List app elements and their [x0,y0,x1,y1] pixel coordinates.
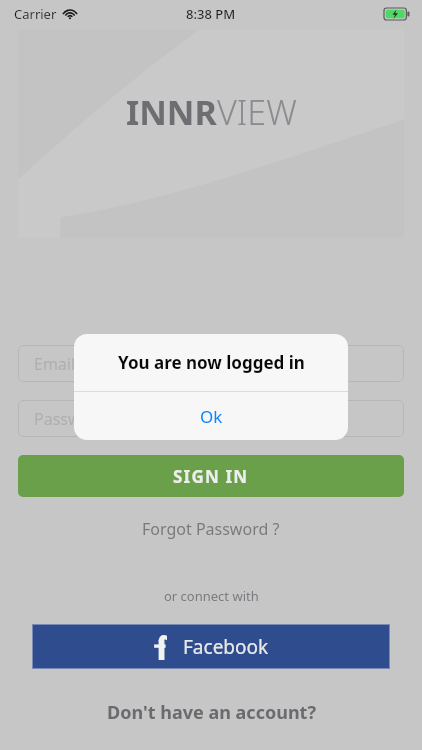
staticText: Ok [200,405,223,428]
button[interactable]: Ok [74,392,348,440]
staticText: Forgot Password ? [142,518,280,540]
staticText: Facebook [183,634,269,660]
button[interactable]: SIGN IN [18,455,404,497]
staticText: You are now logged in [118,351,305,374]
staticText: INNR [126,89,217,135]
staticText: Password [34,408,107,430]
staticText: Email [34,353,76,375]
button[interactable]: Password [18,400,404,437]
staticText: Carrier [14,5,57,23]
staticText: VIEW [217,89,297,135]
button[interactable]: Forgot Password ? [0,516,422,542]
staticText: or connect with [164,587,259,605]
button[interactable]: Email [18,345,404,382]
staticText: Don't have an account? [107,700,316,725]
staticText: 8:38 PM [186,5,236,23]
button[interactable]: Facebook [32,624,390,669]
staticText: SIGN IN [173,465,249,488]
button[interactable]: Don't have an account? [0,694,422,731]
